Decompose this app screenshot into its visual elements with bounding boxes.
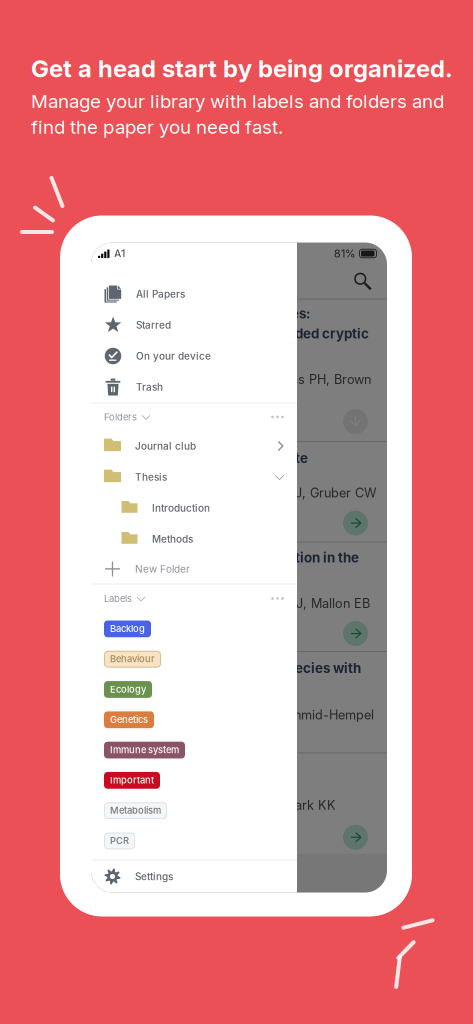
staticText: Ecology <box>110 684 146 695</box>
button[interactable]: Add new <box>91 854 387 897</box>
staticText: find the paper you need fast. <box>31 116 283 138</box>
button[interactable]: Methods <box>91 523 297 554</box>
staticText: Thesis <box>135 471 167 483</box>
button[interactable]: PCR <box>104 832 135 849</box>
button[interactable]: Thesis <box>91 461 297 492</box>
staticText: Park KK <box>287 797 336 813</box>
staticText: chmid-Hempel <box>287 707 374 722</box>
staticText: RJ, Gruber CW <box>287 485 376 500</box>
button[interactable]: Ecology <box>104 681 152 698</box>
button[interactable]: Settings <box>91 860 297 892</box>
button[interactable]: Metabolism <box>104 802 167 819</box>
button[interactable]: Behaviour <box>104 651 161 668</box>
staticText: Starred <box>136 319 171 331</box>
staticText: New Folder <box>135 563 190 575</box>
staticText: Metabolism <box>110 805 161 816</box>
staticText: On your device <box>136 350 211 362</box>
button[interactable]: Trash <box>91 371 297 402</box>
button[interactable]: Important <box>104 772 160 789</box>
button[interactable]: All Papers <box>91 278 297 309</box>
staticText: 81% <box>334 247 355 260</box>
staticText: ation in the <box>287 549 359 566</box>
staticText: pecies with <box>287 660 361 676</box>
button[interactable]: Introduction <box>91 492 297 523</box>
button[interactable]: Starred <box>91 309 297 340</box>
staticText: Manage your library with labels and fold… <box>31 90 444 113</box>
staticText: Labels <box>104 593 132 604</box>
button[interactable]: On your device <box>91 340 297 371</box>
staticText: ate <box>287 450 308 466</box>
button[interactable]: Immune system <box>104 742 185 758</box>
button[interactable]: Journal club <box>91 430 297 461</box>
button[interactable]: Genetics <box>104 711 154 728</box>
staticText: Get a head start by being organized. <box>31 54 453 83</box>
button[interactable]: Folders <box>91 403 297 430</box>
button[interactable]: Open paper <box>343 621 368 646</box>
staticText: A1 <box>114 247 125 260</box>
staticText: Methods <box>152 533 193 545</box>
staticText: Backlog <box>110 623 145 634</box>
staticText: Trash <box>136 381 163 393</box>
button[interactable]: Labels <box>91 585 297 612</box>
staticText: Journal club <box>135 440 196 452</box>
staticText: PCR <box>110 835 129 846</box>
staticText: oded cryptic <box>287 326 369 342</box>
staticText: ies: <box>287 305 310 322</box>
staticText: CJ, Mallon EB <box>287 596 370 611</box>
button[interactable]: Download paper <box>343 409 368 434</box>
staticText: Immune system <box>110 744 179 755</box>
staticText: ms PH, Brown <box>287 372 371 387</box>
staticText: Folders <box>104 411 137 423</box>
button[interactable]: Open paper <box>343 825 368 850</box>
staticText: Introduction <box>152 502 210 514</box>
staticText: Settings <box>135 870 173 883</box>
staticText: Behaviour <box>110 653 155 665</box>
staticText: All Papers <box>136 288 185 300</box>
staticText: Important <box>110 774 154 786</box>
button[interactable]: Open paper <box>343 510 368 535</box>
staticText: Genetics <box>110 714 148 725</box>
button[interactable]: Search <box>343 264 387 298</box>
button[interactable]: New Folder <box>91 554 297 583</box>
button[interactable]: Backlog <box>104 620 151 637</box>
